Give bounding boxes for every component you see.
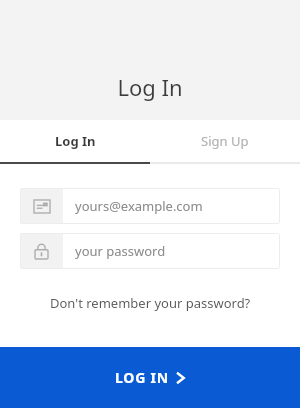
staticText: your password — [75, 242, 166, 260]
staticText: LOG IN — [115, 368, 170, 387]
staticText: Don't remember your password? — [50, 294, 251, 312]
button[interactable]: Sign Up — [150, 120, 300, 162]
button[interactable]: Email — [20, 188, 280, 224]
button[interactable]: Log In — [0, 120, 150, 162]
other: Password — [20, 233, 63, 269]
button[interactable]: LOG IN — [0, 347, 300, 408]
staticText: Log In — [55, 132, 96, 150]
button[interactable]: Don't remember your password? — [0, 288, 300, 318]
button[interactable]: Password — [20, 233, 280, 269]
staticText: Sign Up — [201, 132, 249, 150]
staticText: yours@example.com — [75, 197, 203, 215]
staticText: Log In — [0, 72, 300, 102]
other: Email — [20, 188, 63, 224]
